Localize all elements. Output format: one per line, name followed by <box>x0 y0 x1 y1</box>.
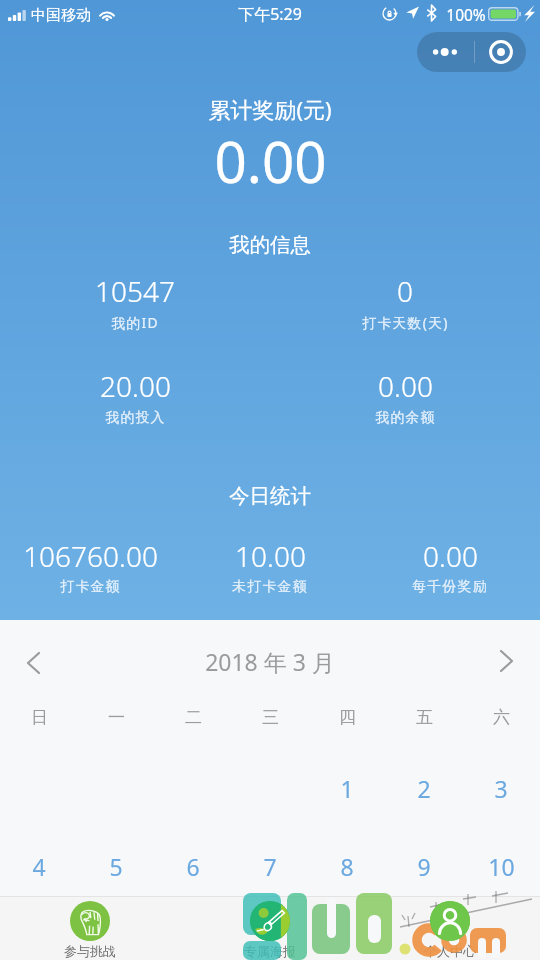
staticText: 今日统计 <box>229 483 311 509</box>
staticText: 日 <box>31 707 48 728</box>
staticText: 0.00 <box>378 367 433 405</box>
staticText: 打卡金额 <box>60 578 121 595</box>
staticText: 我的信息 <box>229 232 311 258</box>
staticText: 个人中心 <box>424 943 476 959</box>
button[interactable]: 3 <box>463 750 539 826</box>
staticText: 1 <box>340 773 354 804</box>
button[interactable]: 12 <box>78 905 154 960</box>
staticText: 14 <box>257 928 284 959</box>
staticText: 2 <box>417 773 431 804</box>
staticText: 100% <box>446 4 486 25</box>
staticText: 8 <box>340 851 354 882</box>
button[interactable]: 5 <box>78 828 154 904</box>
button[interactable]: 个人中心 <box>360 897 540 960</box>
button[interactable]: 14 <box>232 905 308 960</box>
staticText: 10547 <box>95 272 175 310</box>
staticText: 未打卡金额 <box>232 578 308 595</box>
staticText: 下午5:29 <box>238 3 302 25</box>
staticText: 0 <box>397 272 413 310</box>
staticText: 二 <box>185 707 202 728</box>
button[interactable]: 2 <box>386 750 462 826</box>
staticText: 中国移动 <box>31 6 91 25</box>
staticText: 我的ID <box>111 313 159 332</box>
staticText: 三 <box>262 707 279 728</box>
staticText: 我的投入 <box>105 409 166 426</box>
staticText: 7 <box>263 851 277 882</box>
button[interactable]: 7 <box>232 828 308 904</box>
staticText: 每千份奖励 <box>412 578 488 595</box>
staticText: 10.00 <box>235 537 306 575</box>
button[interactable]: 8 <box>309 828 385 904</box>
staticText: 四 <box>339 707 356 728</box>
staticText: 六 <box>493 707 510 728</box>
staticText: 20.00 <box>100 367 171 405</box>
staticText: 9 <box>417 851 431 882</box>
staticText: 五 <box>416 707 433 728</box>
staticText: 0.00 <box>214 123 327 200</box>
staticText: 3 <box>494 773 508 804</box>
button[interactable]: Previous month <box>15 645 51 681</box>
staticText: 参与挑战 <box>64 943 116 959</box>
button[interactable]: Mini program menu <box>417 32 526 72</box>
staticText: 专属海报 <box>244 943 296 959</box>
button[interactable]: 6 <box>155 828 231 904</box>
staticText: 2018 年 3 月 <box>205 646 335 677</box>
button[interactable]: 4 <box>1 828 77 904</box>
staticText: 0.00 <box>423 537 478 575</box>
staticText: 我的余额 <box>375 409 436 426</box>
button[interactable]: 11 <box>1 905 77 960</box>
button[interactable]: 10 <box>463 828 539 904</box>
button[interactable]: 1 <box>309 750 385 826</box>
button[interactable]: 9 <box>386 828 462 904</box>
staticText: 4 <box>32 851 46 882</box>
button[interactable]: 专属海报 <box>180 897 360 960</box>
staticText: 10 <box>488 851 515 882</box>
staticText: 12 <box>103 928 130 959</box>
staticText: 累计奖励(元) <box>208 94 332 124</box>
button[interactable]: 参与挑战 <box>0 897 180 960</box>
button[interactable]: Next month <box>488 643 524 679</box>
staticText: 打卡天数(天) <box>362 313 449 332</box>
staticText: 6 <box>186 851 200 882</box>
staticText: 5 <box>109 851 123 882</box>
staticText: 106760.00 <box>23 537 158 575</box>
staticText: 一 <box>108 707 125 728</box>
